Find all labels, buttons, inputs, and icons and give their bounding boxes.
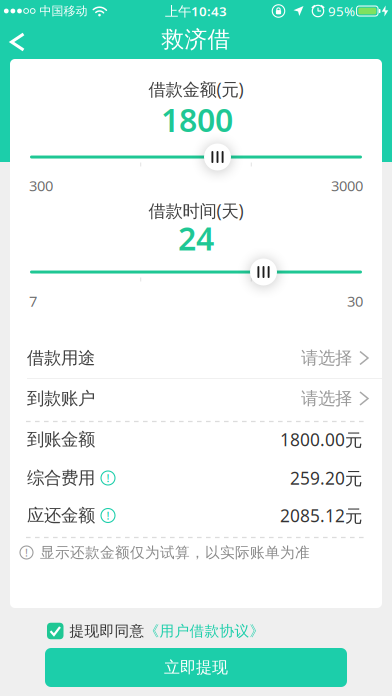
- staticText: 300: [29, 176, 53, 195]
- button[interactable]: 说明: [95, 471, 115, 485]
- staticText: 请选择: [301, 388, 352, 409]
- staticText: 95%: [328, 2, 355, 20]
- button[interactable]: 同意用户借款协议: [0, 619, 392, 643]
- staticText: 立即提现: [164, 658, 228, 677]
- staticText: 请选择: [301, 347, 352, 369]
- staticText: 《用户借款协议》: [144, 622, 264, 640]
- staticText: 借款时间(天): [148, 199, 243, 222]
- button[interactable]: 说明: [95, 508, 115, 522]
- staticText: 到款账户: [27, 388, 95, 409]
- staticText: 上午10:43: [165, 2, 227, 20]
- button[interactable]: 立即提现: [45, 648, 347, 687]
- button[interactable]: 到款账户: [10, 378, 382, 418]
- staticText: 3000: [331, 176, 363, 195]
- staticText: 1800: [161, 98, 233, 141]
- staticText: 救济借: [161, 26, 230, 53]
- staticText: !: [106, 471, 109, 485]
- staticText: 综合费用: [27, 467, 95, 489]
- staticText: 7: [29, 291, 37, 311]
- staticText: 提现即同意: [69, 622, 144, 640]
- button[interactable]: 借款金额滑块: [204, 143, 231, 170]
- staticText: 到账金额: [27, 429, 95, 450]
- staticText: 24: [178, 217, 214, 259]
- button[interactable]: 借款用途: [10, 338, 382, 378]
- staticText: 应还金额: [27, 505, 95, 526]
- staticText: 显示还款金额仅为试算，以实际账单为准: [40, 543, 310, 561]
- staticText: 借款金额(元): [148, 77, 243, 100]
- staticText: !: [106, 508, 109, 523]
- staticText: !: [25, 545, 28, 560]
- staticText: 2085.12元: [280, 504, 362, 527]
- staticText: 259.20元: [290, 466, 362, 489]
- staticText: 借款用途: [27, 347, 95, 369]
- button[interactable]: Back: [0, 22, 37, 62]
- staticText: 30: [347, 291, 363, 311]
- staticText: 中国移动: [39, 4, 87, 18]
- button[interactable]: 借款时间滑块: [250, 258, 277, 285]
- staticText: 1800.00元: [280, 428, 362, 451]
